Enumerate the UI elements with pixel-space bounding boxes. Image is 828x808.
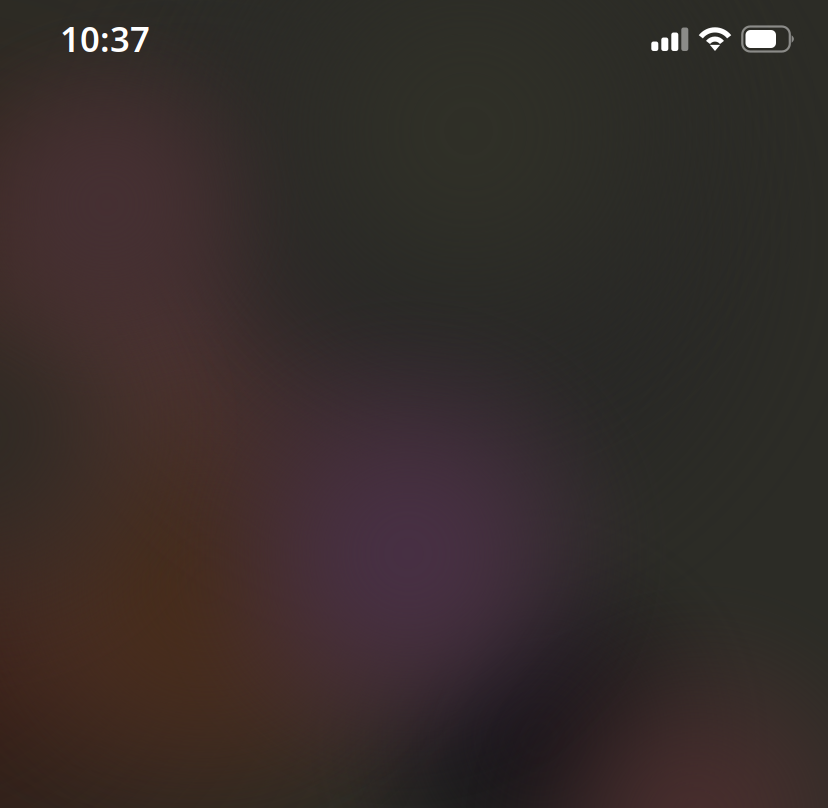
staticText: 10:37 [60, 15, 150, 61]
